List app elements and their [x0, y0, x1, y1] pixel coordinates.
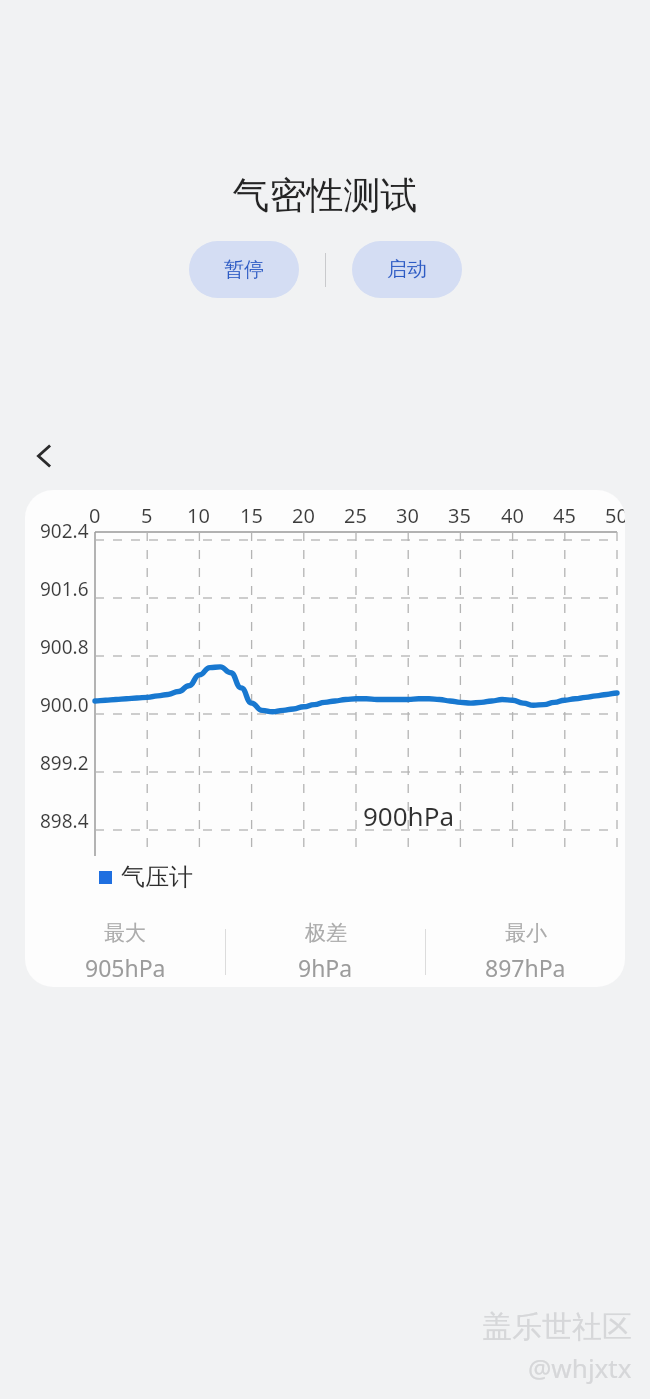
staticText: 气密性测试	[0, 172, 650, 219]
staticText: 898.4	[40, 808, 89, 834]
staticText: 气压计	[121, 862, 193, 892]
staticText: 5	[141, 502, 153, 529]
staticText: 15	[240, 502, 263, 529]
staticText: 25	[344, 502, 367, 529]
staticText: 9hPa	[298, 952, 353, 983]
button[interactable]: 极差	[226, 920, 425, 983]
staticText: 905hPa	[85, 952, 166, 983]
staticText: 40	[501, 502, 524, 529]
staticText: 900.8	[40, 634, 89, 660]
staticText: 902.4	[40, 518, 89, 544]
button[interactable]: 最小	[426, 920, 625, 983]
staticText: 盖乐世社区	[482, 1308, 632, 1346]
staticText: 901.6	[40, 576, 89, 602]
button[interactable]: 最大	[25, 920, 225, 983]
staticText: 最大	[104, 920, 146, 946]
staticText: 45	[553, 502, 576, 529]
staticText: 启动	[387, 257, 427, 282]
staticText: @whjxtx	[528, 1350, 632, 1385]
staticText: 20	[292, 502, 315, 529]
staticText: 0	[89, 502, 101, 529]
staticText: 最小	[505, 920, 547, 946]
button[interactable]: 启动	[352, 241, 462, 298]
staticText: 极差	[305, 920, 347, 946]
staticText: 30	[396, 502, 419, 529]
staticText: 899.2	[40, 750, 89, 776]
staticText: 897hPa	[485, 952, 566, 983]
staticText: 暂停	[224, 257, 264, 282]
staticText: 10	[187, 502, 210, 529]
staticText: 900.0	[40, 692, 89, 718]
staticText: 900hPa	[363, 798, 455, 833]
staticText: 50	[605, 502, 625, 529]
button[interactable]: Back	[18, 430, 70, 482]
staticText: 35	[448, 502, 471, 529]
button[interactable]: 暂停	[189, 241, 299, 298]
